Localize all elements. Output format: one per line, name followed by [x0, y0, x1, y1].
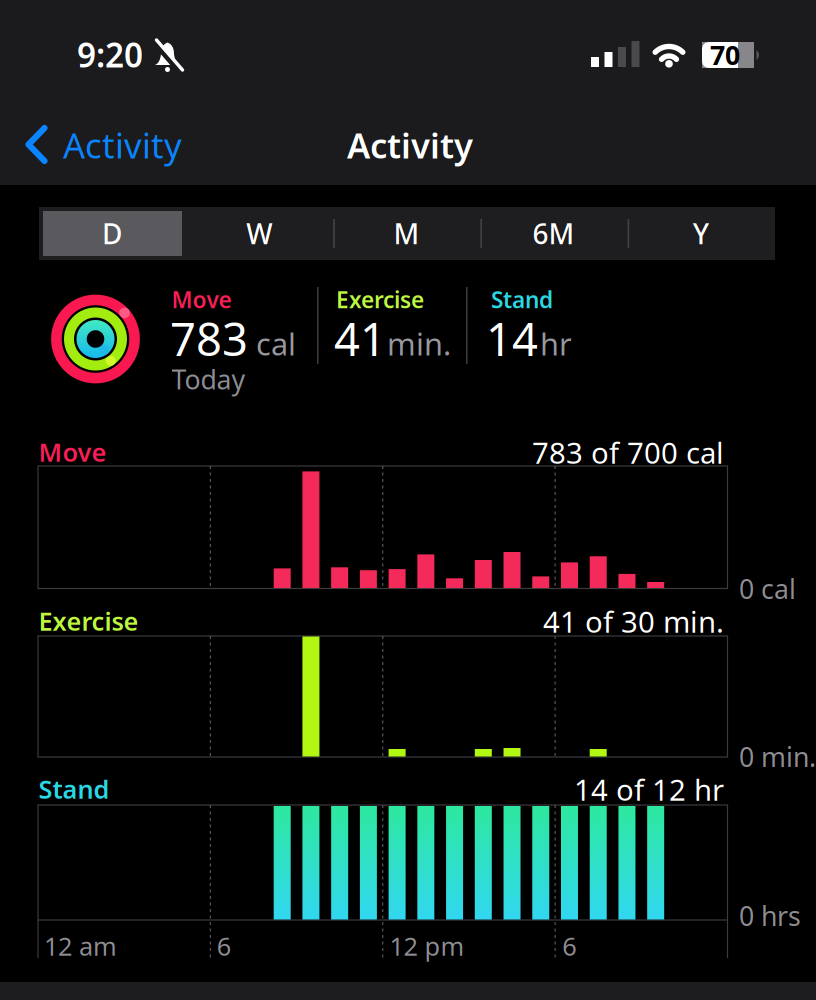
staticText: cal — [256, 323, 296, 364]
staticText: Move — [171, 284, 231, 314]
staticText: 70 — [710, 37, 740, 72]
button[interactable]: M — [333, 207, 480, 260]
button[interactable]: D — [38, 207, 185, 260]
button[interactable]: 6M — [480, 207, 627, 260]
staticText: Stand — [491, 284, 553, 314]
staticText: 0 hrs — [739, 898, 801, 933]
staticText: 41 — [334, 308, 386, 368]
staticText: Exercise — [38, 604, 138, 638]
staticText: Y — [693, 215, 709, 252]
staticText: M — [393, 215, 419, 252]
staticText: Exercise — [336, 284, 424, 314]
staticText: Today — [171, 361, 245, 397]
staticText: 12 pm — [389, 929, 464, 963]
staticText: 14 of 12 hr — [574, 770, 724, 809]
staticText: W — [246, 215, 272, 252]
staticText: min. — [387, 323, 451, 364]
staticText: 12 am — [44, 929, 117, 963]
staticText: Activity — [63, 122, 182, 168]
button[interactable]: Y — [627, 207, 774, 260]
staticText: 6 — [217, 929, 231, 963]
staticText: Activity — [347, 122, 473, 168]
button[interactable]: W — [186, 207, 333, 260]
staticText: 6M — [533, 215, 575, 252]
staticText: 0 cal — [739, 571, 796, 606]
staticText: 9:20 — [77, 32, 143, 77]
staticText: Stand — [38, 772, 109, 806]
staticText: 783 of 700 cal — [532, 433, 724, 472]
staticText: 14 — [486, 308, 538, 368]
staticText: hr — [540, 323, 572, 364]
staticText: Move — [38, 435, 106, 469]
staticText: 41 of 30 min. — [543, 602, 724, 641]
staticText: 6 — [562, 929, 576, 963]
staticText: D — [102, 215, 122, 252]
staticText: 0 min. — [739, 739, 816, 774]
button[interactable]: Back — [0, 0, 560, 46]
staticText: 783 — [170, 308, 248, 368]
